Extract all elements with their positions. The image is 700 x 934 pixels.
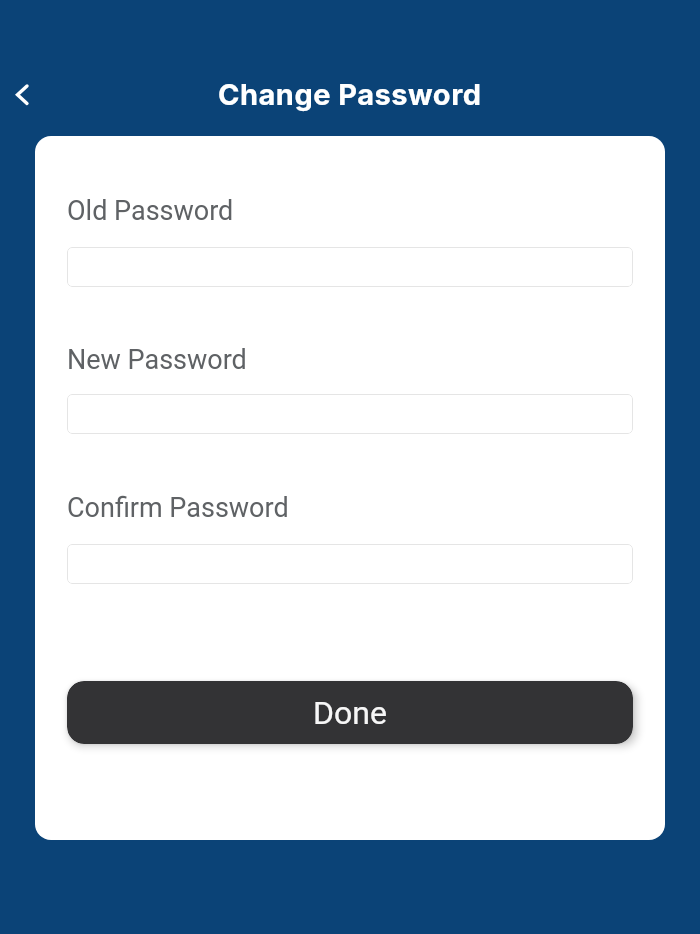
button[interactable]: Done bbox=[67, 681, 633, 744]
staticText: Old Password bbox=[67, 195, 234, 227]
button[interactable] bbox=[67, 394, 633, 434]
button[interactable] bbox=[6, 78, 38, 110]
staticText: Confirm Password bbox=[67, 492, 289, 524]
button[interactable] bbox=[67, 544, 633, 584]
staticText: Change Password bbox=[218, 77, 482, 112]
staticText: New Password bbox=[67, 344, 247, 376]
button[interactable] bbox=[67, 247, 633, 287]
staticText: Done bbox=[313, 694, 387, 732]
